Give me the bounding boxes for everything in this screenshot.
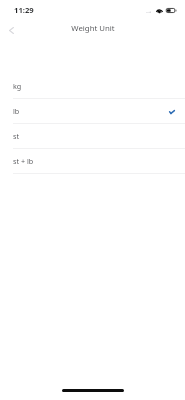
button[interactable]: st	[0, 124, 185, 149]
staticText: lb	[13, 106, 20, 116]
staticText: 11:29	[14, 5, 34, 15]
button[interactable]: lb	[0, 99, 185, 124]
other: Selected	[169, 110, 175, 114]
staticText: st + lb	[13, 156, 34, 166]
button[interactable]: kg	[0, 74, 185, 99]
other: Signal, Wi-Fi and battery status	[0, 0, 185, 21]
button[interactable]: Back	[2, 21, 20, 39]
button[interactable]: st + lb	[0, 149, 185, 174]
staticText: Weight Unit	[71, 23, 115, 34]
staticText: kg	[13, 81, 22, 91]
staticText: st	[13, 131, 20, 141]
